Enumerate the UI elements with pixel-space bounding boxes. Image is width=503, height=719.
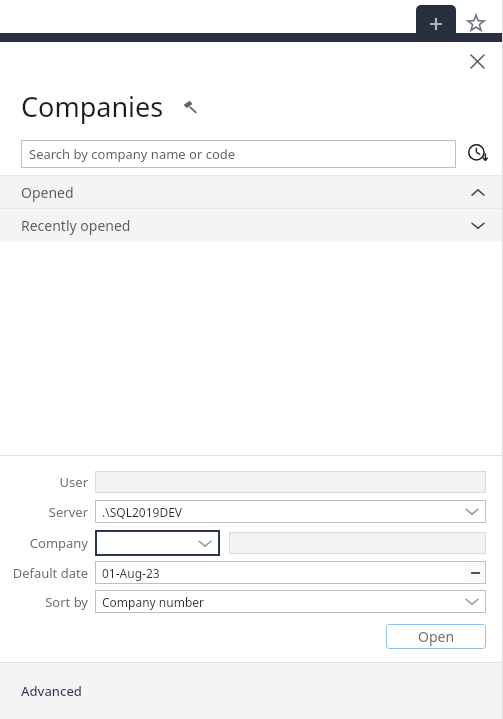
- staticText: User: [59, 473, 88, 491]
- button[interactable]: New tab: [416, 5, 456, 42]
- staticText: Sort by: [45, 593, 88, 611]
- staticText: Company: [29, 534, 88, 552]
- staticText: Companies: [21, 88, 164, 125]
- button[interactable]: Search by company name or code: [21, 140, 456, 168]
- staticText: Advanced: [21, 682, 82, 700]
- button[interactable]: 01-Aug-23: [95, 561, 464, 584]
- staticText: Search by company name or code: [29, 145, 236, 163]
- staticText: .\SQL2019DEV: [102, 504, 183, 520]
- button[interactable]: [229, 532, 486, 554]
- button[interactable]: Close: [463, 47, 491, 75]
- button[interactable]: Pick date: [464, 561, 486, 584]
- button[interactable]: .\SQL2019DEV: [95, 500, 486, 523]
- staticText: Default date: [12, 564, 88, 582]
- button[interactable]: Recently opened: [0, 209, 503, 241]
- staticText: Open: [418, 627, 455, 646]
- staticText: Company number: [102, 594, 204, 610]
- button[interactable]: [95, 471, 486, 493]
- button[interactable]: Advanced: [0, 663, 503, 719]
- button[interactable]: Opened: [0, 176, 503, 208]
- button[interactable]: Recent searches: [465, 141, 491, 167]
- staticText: 01-Aug-23: [102, 565, 160, 581]
- button[interactable]: [95, 530, 220, 556]
- button[interactable]: Bookmark: [462, 9, 490, 37]
- button[interactable]: Open: [386, 624, 486, 649]
- staticText: Opened: [21, 183, 74, 202]
- button[interactable]: Company number: [95, 590, 486, 613]
- button[interactable]: Pin: [176, 93, 202, 119]
- staticText: Server: [48, 503, 88, 521]
- staticText: Recently opened: [21, 216, 131, 235]
